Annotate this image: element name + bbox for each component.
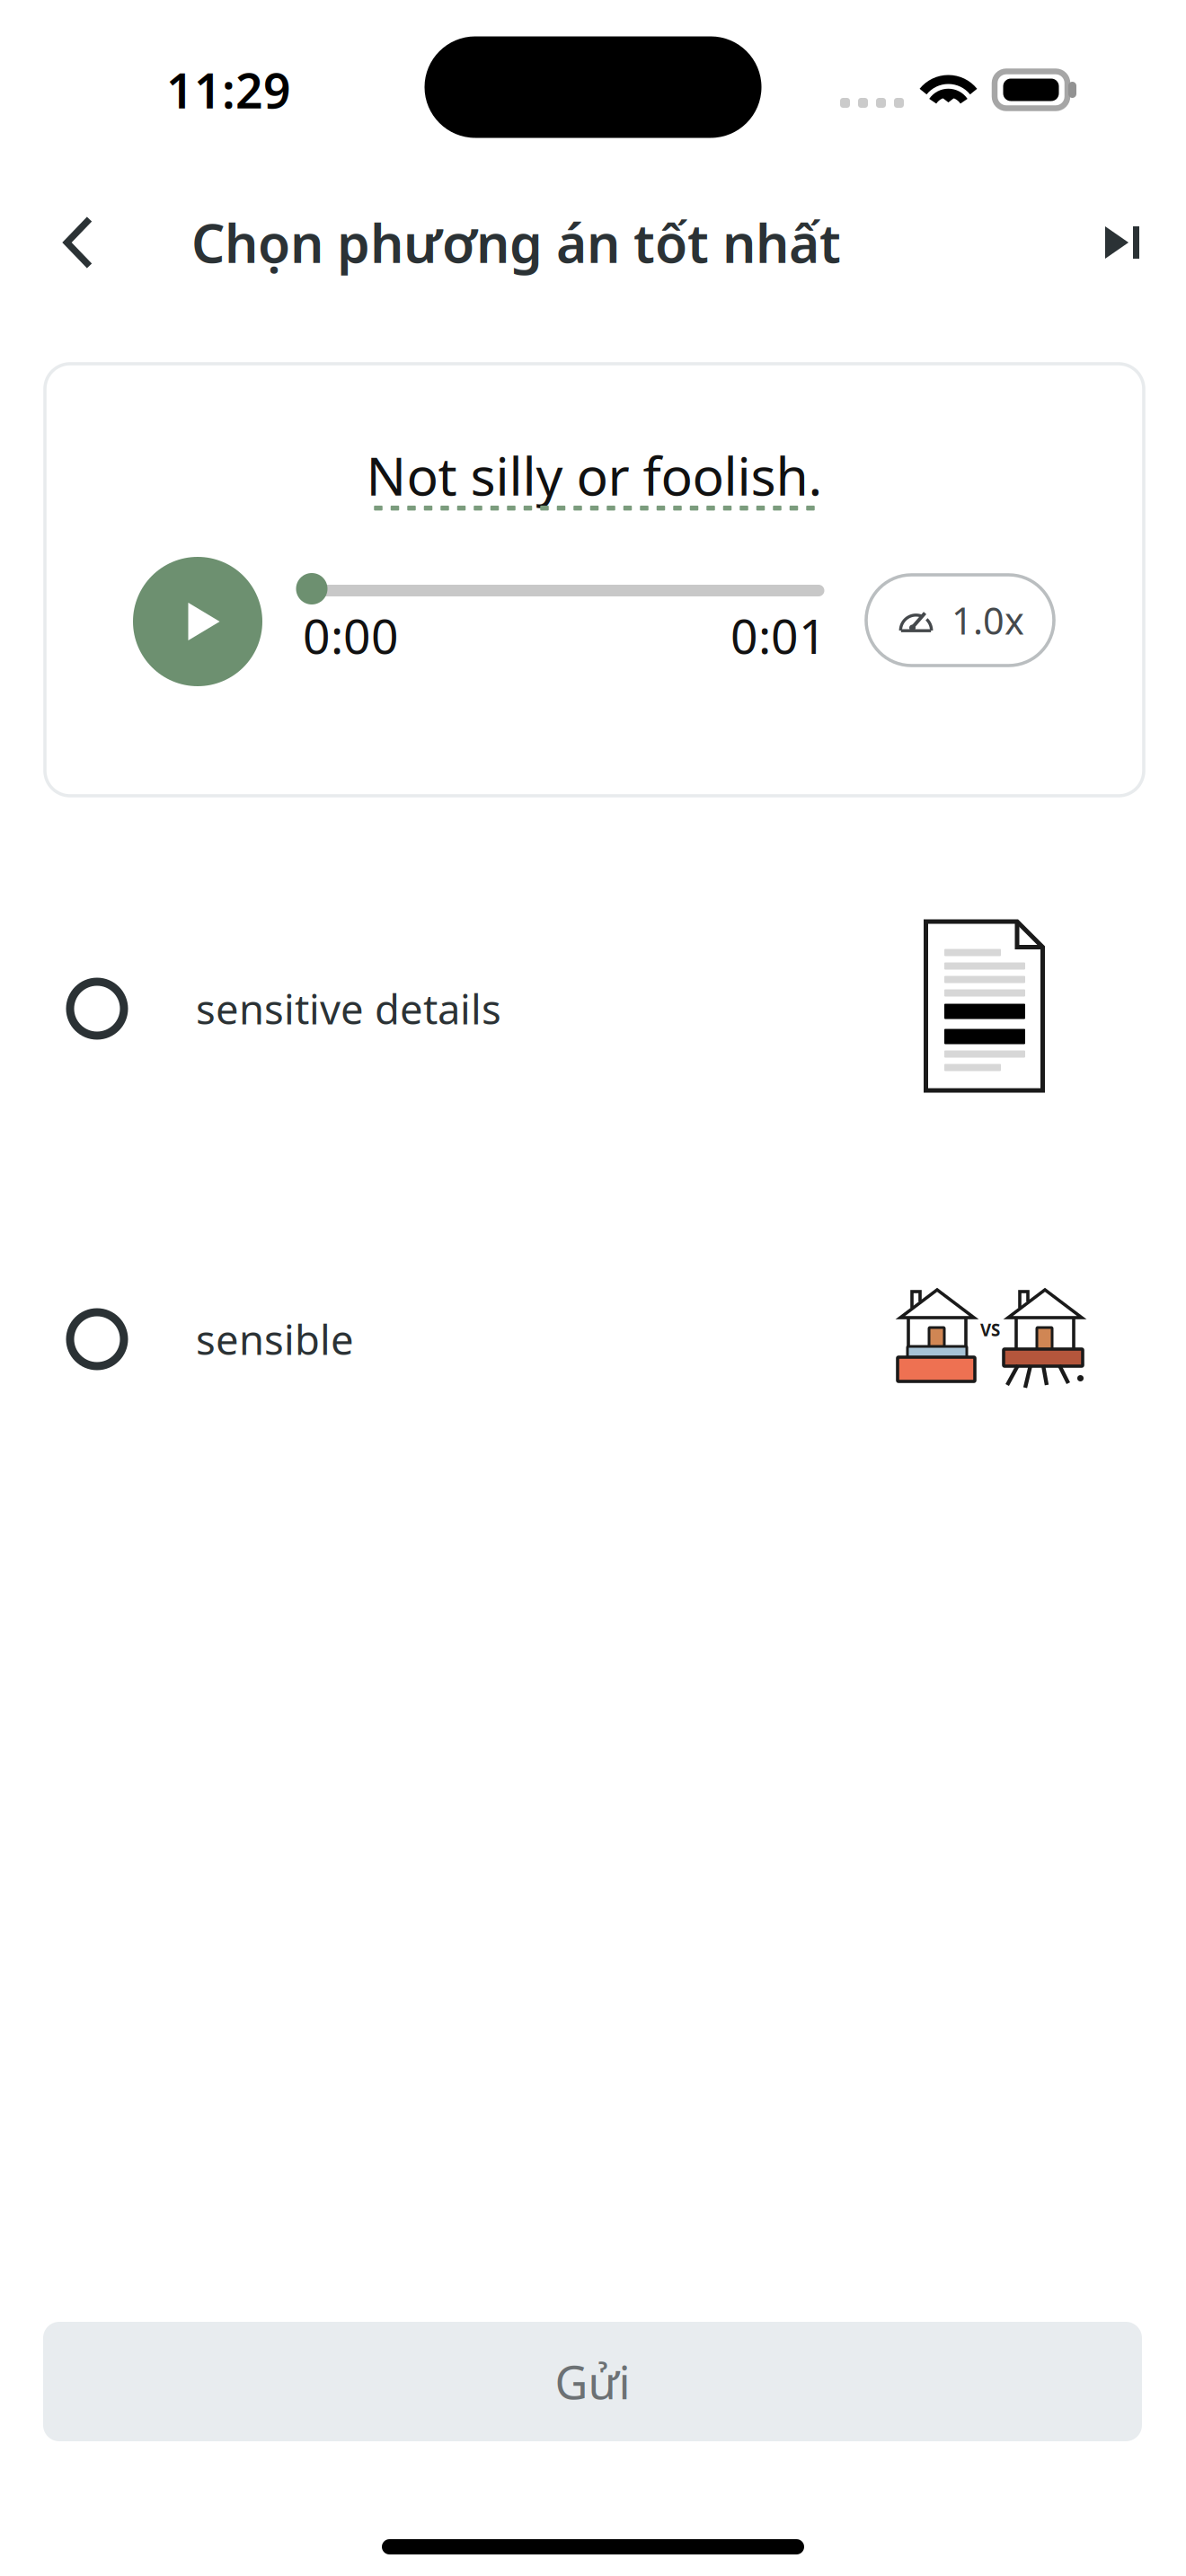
staticText: 11:29	[166, 58, 291, 122]
staticText: 1.0x	[951, 596, 1024, 645]
button[interactable]: 1.0x	[866, 575, 1054, 666]
button[interactable]: Skip to end	[1082, 189, 1163, 296]
button[interactable]: sensitive details	[0, 905, 1186, 1112]
button[interactable]: Play	[133, 557, 262, 686]
staticText: Chọn phương án tốt nhất	[191, 207, 841, 277]
staticText: sensible	[196, 1312, 354, 1366]
staticText: Gửi	[555, 2351, 630, 2412]
staticText: VS	[980, 1319, 1000, 1341]
staticText: Not silly or foolish.	[366, 440, 823, 510]
staticText: sensitive details	[196, 982, 501, 1036]
staticText: 0:00	[303, 604, 399, 667]
button[interactable]: Back	[37, 189, 119, 296]
button[interactable]: Gửi	[43, 2322, 1142, 2441]
button[interactable]: sensible	[0, 1263, 1186, 1416]
staticText: 0:01	[730, 604, 827, 667]
